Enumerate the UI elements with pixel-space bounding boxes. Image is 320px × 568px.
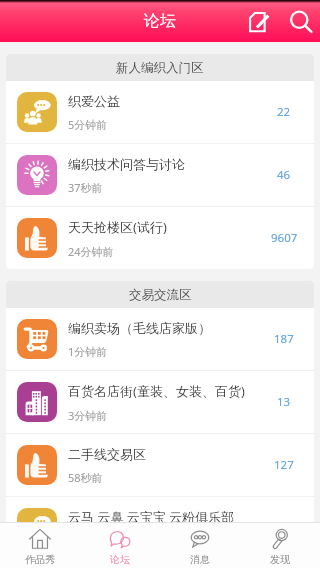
- button[interactable]: 编织卖场（毛线店家版）: [6, 308, 314, 370]
- staticText: 13: [277, 394, 291, 410]
- staticText: 交易交流区: [129, 287, 192, 303]
- button[interactable]: 编织技术问答与讨论: [6, 144, 314, 206]
- staticText: 24分钟前: [68, 244, 114, 259]
- staticText: 消息: [190, 553, 210, 566]
- button[interactable]: 作品秀: [0, 526, 80, 568]
- staticText: 织爱公益: [68, 93, 120, 109]
- button[interactable]: 发现: [240, 526, 320, 568]
- staticText: 论坛: [144, 11, 176, 31]
- staticText: 编织卖场（毛线店家版）: [68, 320, 211, 336]
- button[interactable]: Search: [278, 1, 318, 41]
- staticText: 二手线交易区: [68, 446, 146, 462]
- button[interactable]: 织爱公益: [6, 81, 314, 143]
- staticText: 22: [277, 104, 291, 120]
- staticText: 9607: [271, 230, 298, 246]
- staticText: 作品秀: [25, 553, 55, 566]
- button[interactable]: 天天抢楼区(试行): [6, 207, 314, 269]
- staticText: 论坛: [110, 553, 130, 566]
- button[interactable]: 论坛: [80, 526, 160, 568]
- button[interactable]: 二手线交易区: [6, 434, 314, 496]
- button[interactable]: 云马 云鼻 云宝宝 云粉俱乐部: [6, 497, 314, 522]
- staticText: 3分钟前: [68, 408, 108, 423]
- staticText: 37秒前: [68, 180, 103, 195]
- staticText: 天天抢楼区(试行): [68, 218, 167, 236]
- staticText: 5分钟前: [68, 117, 108, 132]
- staticText: 百货名店街(童装、女装、百货): [68, 382, 245, 400]
- staticText: 127: [274, 457, 294, 473]
- staticText: 编织技术问答与讨论: [68, 156, 185, 172]
- staticText: 云马 云鼻 云宝宝 云粉俱乐部: [68, 508, 235, 522]
- staticText: 58秒前: [68, 470, 103, 485]
- staticText: 发现: [270, 553, 290, 566]
- staticText: 1分钟前: [68, 344, 108, 359]
- staticText: 46: [277, 167, 291, 183]
- staticText: 新人编织入门区: [116, 60, 204, 76]
- staticText: 187: [274, 331, 294, 347]
- button[interactable]: 消息: [160, 526, 240, 568]
- button[interactable]: Compose post: [238, 1, 278, 41]
- button[interactable]: 百货名店街(童装、女装、百货): [6, 371, 314, 433]
